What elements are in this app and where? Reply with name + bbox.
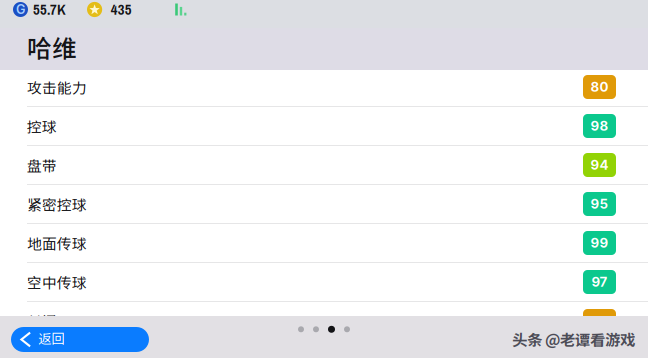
staticText: 98 — [590, 118, 608, 134]
button[interactable]: 紧密控球 — [0, 185, 648, 224]
button[interactable]: 地面传球 — [0, 224, 648, 263]
staticText: 盘带 — [27, 154, 57, 176]
button[interactable]: 盘带 — [0, 146, 648, 185]
button[interactable]: 射门 — [0, 302, 648, 341]
staticText: 95 — [590, 196, 608, 212]
staticText: 94 — [590, 157, 608, 173]
button[interactable]: 攻击能力 — [0, 68, 648, 107]
staticText: 哈维 — [27, 29, 77, 65]
staticText: 78 — [591, 313, 608, 329]
staticText: 控球 — [27, 115, 57, 137]
button[interactable]: 返回 — [11, 327, 149, 352]
staticText: G — [16, 2, 25, 17]
staticText: 99 — [590, 235, 608, 251]
staticText: 射门 — [27, 310, 57, 332]
staticText: 80 — [590, 79, 608, 95]
staticText: 97 — [591, 274, 607, 290]
staticText: 435 — [111, 0, 132, 19]
staticText: 地面传球 — [27, 232, 87, 254]
button[interactable]: 控球 — [0, 107, 648, 146]
staticText: 空中传球 — [27, 271, 87, 293]
staticText: 55.7K — [33, 0, 66, 19]
staticText: 头条 @老谭看游戏 — [512, 328, 635, 350]
staticText: 攻击能力 — [27, 76, 87, 98]
staticText: 返回 — [39, 328, 65, 348]
staticText: 紧密控球 — [27, 193, 87, 215]
button[interactable]: 空中传球 — [0, 263, 648, 302]
